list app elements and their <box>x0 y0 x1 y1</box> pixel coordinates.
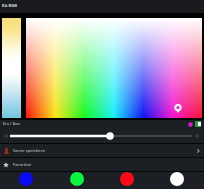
staticText: Favoriten <box>13 162 32 168</box>
button[interactable]: Farbe <box>170 172 184 186</box>
staticText: Szene speichern <box>13 148 45 154</box>
button[interactable]: Farbe <box>120 172 134 186</box>
button[interactable]: Farbauswahl <box>26 18 202 118</box>
button[interactable]: Helligkeit <box>0 129 204 143</box>
button[interactable]: Farbtemperatur <box>2 18 21 118</box>
button[interactable]: Szene speichern <box>0 144 204 157</box>
button[interactable]: Favoriten <box>0 158 204 171</box>
staticText: Kü RGB <box>2 3 18 9</box>
button[interactable]: Farbe <box>19 172 33 186</box>
staticText: Ein / Aus <box>3 121 21 127</box>
button[interactable]: Farbe <box>70 172 84 186</box>
